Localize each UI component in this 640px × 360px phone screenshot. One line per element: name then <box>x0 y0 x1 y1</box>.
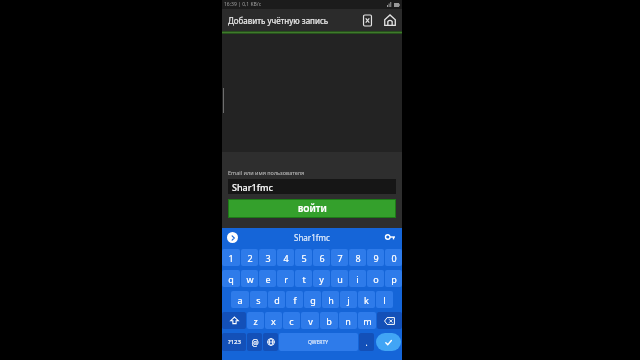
button[interactable]: Закрыть <box>356 9 378 31</box>
button[interactable]: k <box>358 291 375 308</box>
button[interactable]: o <box>367 270 384 287</box>
button[interactable]: 9 <box>367 249 384 266</box>
staticText: n <box>345 315 351 327</box>
staticText: k <box>364 294 369 306</box>
button[interactable]: ВОЙТИ <box>228 199 396 218</box>
staticText: 0 <box>391 252 397 264</box>
staticText: l <box>383 294 386 306</box>
staticText: g <box>310 294 316 306</box>
staticText: 6 <box>319 252 325 264</box>
button[interactable]: 8 <box>349 249 366 266</box>
button[interactable]: v <box>301 312 319 329</box>
staticText: ВОЙТИ <box>298 203 327 214</box>
button[interactable]: 2 <box>241 249 258 266</box>
staticText: c <box>289 315 294 327</box>
button[interactable]: t <box>295 270 312 287</box>
button[interactable]: 5 <box>295 249 312 266</box>
button[interactable]: i <box>349 270 366 287</box>
staticText: x <box>271 315 276 327</box>
staticText: @ <box>251 337 259 348</box>
button[interactable]: QWERTY <box>279 333 358 351</box>
button[interactable]: j <box>340 291 357 308</box>
button[interactable]: Удалить <box>377 312 402 329</box>
staticText: 1 <box>228 252 234 264</box>
button[interactable]: y <box>313 270 330 287</box>
staticText: 7 <box>337 252 343 264</box>
button[interactable]: l <box>376 291 393 308</box>
button[interactable]: n <box>339 312 357 329</box>
button[interactable]: Пароли <box>384 231 396 243</box>
staticText: 5 <box>301 252 307 264</box>
staticText: m <box>363 315 372 327</box>
staticText: u <box>337 273 343 285</box>
staticText: Shar1fmc <box>294 232 330 243</box>
button[interactable]: b <box>320 312 338 329</box>
staticText: v <box>308 315 313 327</box>
staticText: p <box>391 273 397 285</box>
staticText: Shar1fmc <box>232 181 273 193</box>
button[interactable]: 4 <box>277 249 294 266</box>
button[interactable]: m <box>358 312 376 329</box>
button[interactable]: g <box>304 291 321 308</box>
button[interactable]: Сменить язык <box>263 333 278 351</box>
staticText: 8 <box>355 252 361 264</box>
staticText: 4 <box>283 252 289 264</box>
button[interactable]: e <box>259 270 276 287</box>
button[interactable]: w <box>241 270 258 287</box>
staticText: 2 <box>247 252 253 264</box>
button[interactable]: r <box>277 270 294 287</box>
staticText: a <box>237 294 243 306</box>
button[interactable]: d <box>268 291 285 308</box>
staticText: b <box>326 315 332 327</box>
button[interactable]: @ <box>247 333 262 351</box>
button[interactable]: 7 <box>331 249 348 266</box>
button[interactable]: Регистр <box>222 312 246 329</box>
button[interactable]: 1 <box>222 249 240 266</box>
staticText: Добавить учётную запись <box>228 15 356 26</box>
staticText: 3 <box>265 252 271 264</box>
button[interactable]: u <box>331 270 348 287</box>
button[interactable]: 3 <box>259 249 276 266</box>
button[interactable]: z <box>247 312 264 329</box>
button[interactable]: h <box>322 291 339 308</box>
staticText: q <box>228 273 234 285</box>
button[interactable]: Развернуть подсказки <box>227 232 238 243</box>
staticText: z <box>253 315 258 327</box>
button[interactable]: Домой <box>378 9 402 31</box>
button[interactable]: Shar1fmc <box>228 179 396 194</box>
staticText: i <box>356 273 359 285</box>
staticText: 16:39 | 0,1 KB/c <box>224 1 262 8</box>
button[interactable]: c <box>283 312 300 329</box>
button[interactable]: f <box>286 291 303 308</box>
staticText: t <box>302 273 306 285</box>
staticText: QWERTY <box>308 339 329 346</box>
button[interactable]: p <box>385 270 402 287</box>
staticText: ?123 <box>228 338 241 346</box>
button[interactable]: a <box>231 291 249 308</box>
staticText: j <box>347 294 350 306</box>
button[interactable]: q <box>222 270 240 287</box>
staticText: Email или имя пользователя <box>228 169 305 176</box>
staticText: d <box>274 294 280 306</box>
button[interactable]: ?123 <box>222 333 246 351</box>
staticText: s <box>256 294 261 306</box>
button[interactable]: 6 <box>313 249 330 266</box>
staticText: h <box>328 294 334 306</box>
staticText: r <box>284 273 288 285</box>
staticText: o <box>373 273 379 285</box>
staticText: . <box>365 337 368 348</box>
button[interactable]: 0 <box>385 249 402 266</box>
staticText: 9 <box>373 252 379 264</box>
staticText: y <box>319 273 324 285</box>
button[interactable]: s <box>250 291 267 308</box>
button[interactable]: Готово <box>376 333 401 351</box>
staticText: f <box>293 294 297 306</box>
button[interactable]: x <box>265 312 282 329</box>
button[interactable]: . <box>359 333 374 351</box>
staticText: w <box>246 273 254 285</box>
staticText: e <box>265 273 271 285</box>
